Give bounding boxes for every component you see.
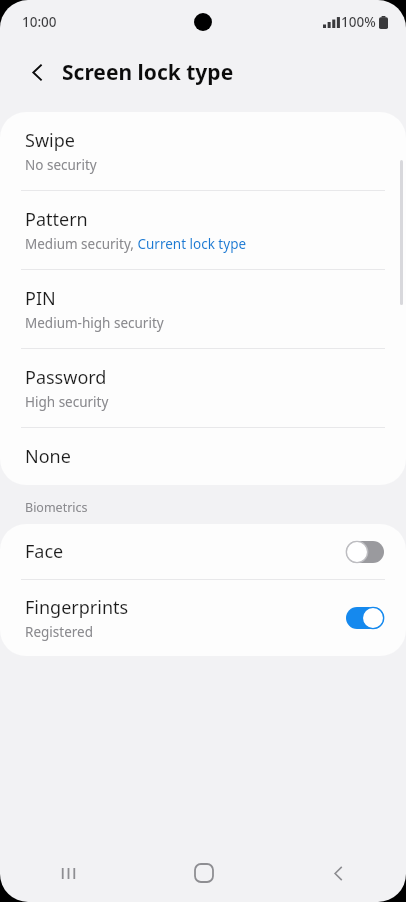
staticText: 10:00 [22, 13, 57, 31]
staticText: None [25, 444, 71, 469]
button[interactable]: Home [136, 844, 271, 902]
button[interactable]: Back [271, 844, 406, 902]
staticText: Screen lock type [62, 58, 234, 87]
staticText: PIN [25, 286, 56, 311]
staticText: Swipe [25, 128, 75, 153]
button[interactable]: Fingerprints [0, 580, 406, 656]
staticText: Password [25, 365, 107, 390]
button[interactable]: None [0, 428, 406, 485]
staticText: Medium-high security [25, 314, 164, 332]
button[interactable]: Pattern [0, 191, 406, 269]
staticText: High security [25, 393, 109, 411]
staticText: 100% [341, 13, 376, 31]
button[interactable]: Back [18, 53, 56, 91]
button[interactable]: Face [0, 524, 406, 579]
button[interactable]: PIN [0, 270, 406, 348]
staticText: Medium security, Current lock type [25, 235, 247, 253]
staticText: No security [25, 156, 97, 174]
button[interactable]: Recent apps [0, 844, 136, 902]
staticText: Registered [25, 623, 93, 641]
button[interactable]: Password [0, 349, 406, 427]
staticText: Fingerprints [25, 595, 129, 620]
button[interactable]: Swipe [0, 112, 406, 190]
staticText: Biometrics [25, 499, 88, 516]
staticText: Face [25, 539, 64, 564]
staticText: Pattern [25, 207, 88, 232]
